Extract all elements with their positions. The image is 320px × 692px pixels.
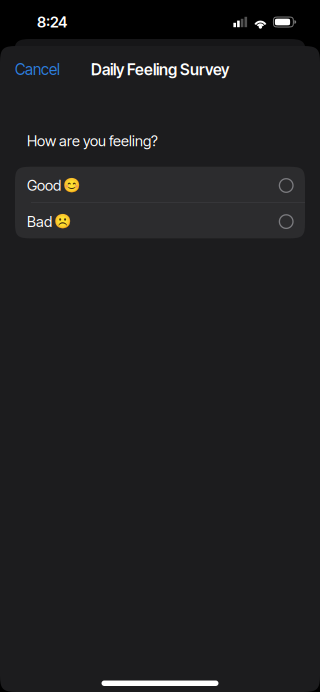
staticText: 😊 bbox=[62, 177, 79, 194]
staticText: Bad bbox=[27, 213, 52, 230]
staticText: How are you feeling? bbox=[27, 132, 158, 150]
staticText: Daily Feeling Survey bbox=[91, 60, 229, 79]
button[interactable]: Good bbox=[15, 167, 305, 202]
staticText: Good bbox=[27, 177, 61, 194]
staticText: Cancel bbox=[15, 60, 60, 79]
staticText: ☹️ bbox=[53, 213, 70, 230]
staticText: 8:24 bbox=[37, 13, 67, 31]
button[interactable]: Bad bbox=[15, 203, 305, 238]
button[interactable]: Cancel bbox=[0, 46, 70, 93]
